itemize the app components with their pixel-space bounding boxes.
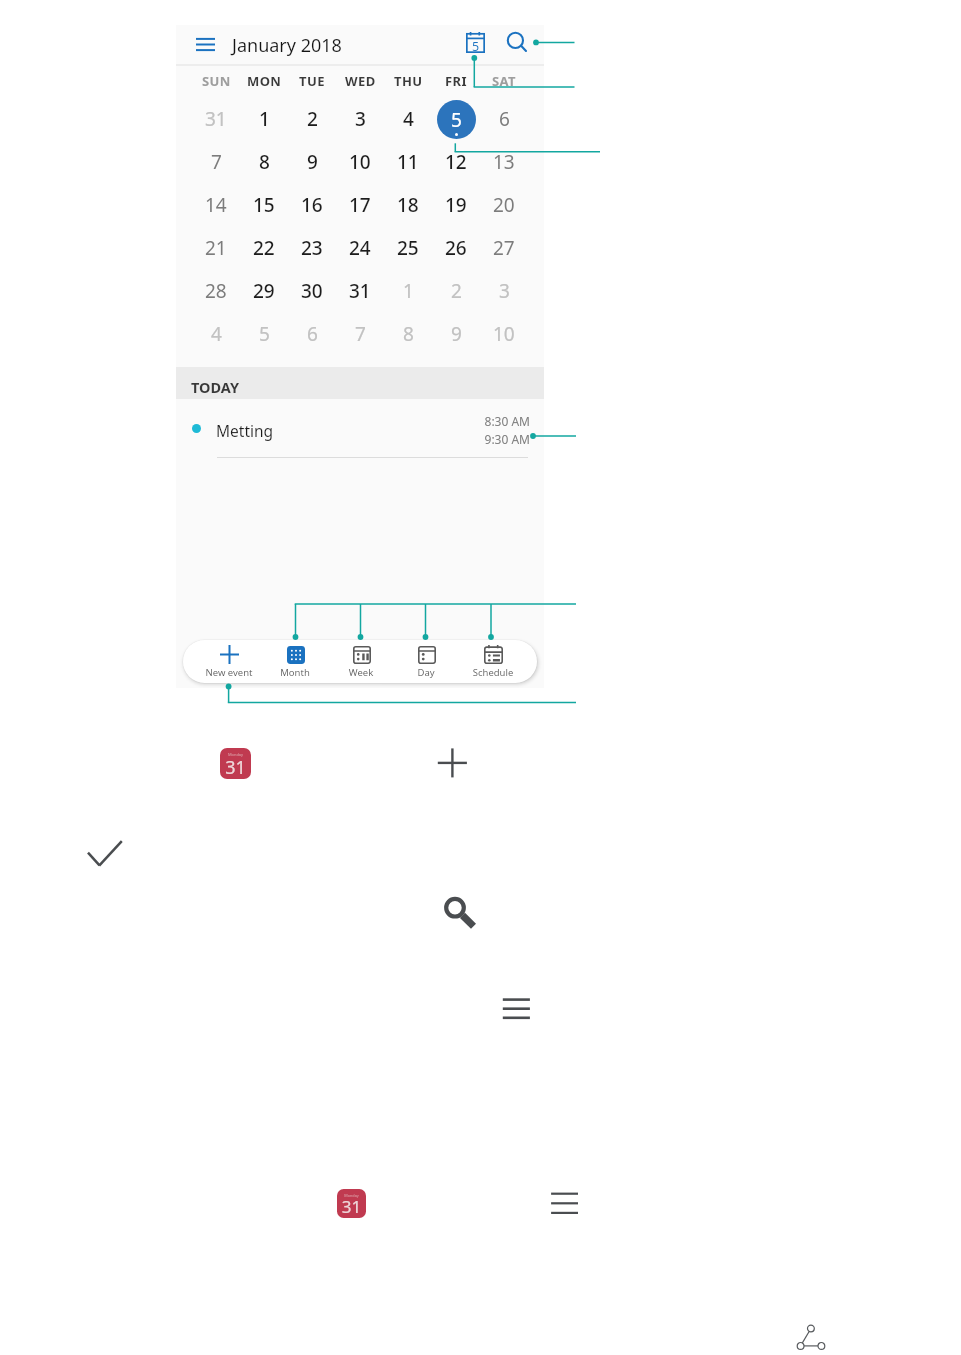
staticText: 26 — [445, 235, 467, 261]
staticText: 9 — [307, 149, 318, 175]
button[interactable]: Day — [393, 640, 459, 683]
staticText: 2 — [307, 106, 318, 132]
button[interactable]: 22 — [240, 228, 288, 268]
staticText: New event — [196, 666, 262, 679]
button[interactable]: 20 — [480, 185, 528, 225]
button[interactable]: Metting — [176, 399, 544, 461]
button[interactable]: 5 — [432, 99, 480, 139]
staticText: TUE — [299, 72, 325, 88]
staticText: 4 — [403, 106, 414, 132]
staticText: FRI — [445, 72, 467, 88]
button[interactable]: 10 — [480, 314, 528, 354]
staticText: 9 — [451, 321, 462, 347]
button[interactable]: 18 — [384, 185, 432, 225]
staticText: 30 — [301, 278, 323, 304]
button[interactable]: 10 — [336, 142, 384, 182]
button[interactable]: Calendar — [337, 1189, 366, 1218]
staticText: 20 — [493, 192, 515, 218]
button[interactable]: 14 — [192, 185, 240, 225]
button[interactable]: 28 — [192, 271, 240, 311]
staticText: 10 — [493, 321, 515, 347]
staticText: Month — [262, 666, 328, 679]
staticText: 11 — [397, 149, 419, 175]
button[interactable]: Search — [502, 27, 529, 54]
button[interactable]: 24 — [336, 228, 384, 268]
button[interactable]: 9 — [288, 142, 336, 182]
button[interactable]: New event — [196, 640, 262, 683]
button[interactable]: 11 — [384, 142, 432, 182]
button[interactable]: 1 — [240, 99, 288, 139]
button[interactable]: 3 — [336, 99, 384, 139]
button[interactable]: Menu — [193, 32, 217, 56]
button[interactable]: Menu — [500, 995, 532, 1022]
button[interactable]: 5 — [240, 314, 288, 354]
button[interactable]: 27 — [480, 228, 528, 268]
button[interactable]: 29 — [240, 271, 288, 311]
staticText: 17 — [349, 192, 371, 218]
staticText: 5 — [451, 107, 462, 133]
staticText: 19 — [445, 192, 467, 218]
staticText: 7 — [211, 149, 222, 175]
button[interactable]: Go to today — [460, 26, 491, 60]
button[interactable]: 3 — [480, 271, 528, 311]
staticText: 3 — [355, 106, 366, 132]
staticText: 18 — [397, 192, 419, 218]
staticText: 6 — [307, 321, 318, 347]
staticText: Day — [393, 666, 459, 679]
button[interactable]: Done — [85, 838, 125, 870]
button[interactable]: 17 — [336, 185, 384, 225]
staticText: 1 — [403, 278, 414, 304]
staticText: 15 — [253, 192, 275, 218]
button[interactable]: 23 — [288, 228, 336, 268]
staticText: Monday — [220, 752, 251, 757]
staticText: 31 — [349, 278, 371, 304]
staticText: 10 — [349, 149, 371, 175]
button[interactable]: 16 — [288, 185, 336, 225]
button[interactable]: 25 — [384, 228, 432, 268]
staticText: 13 — [493, 149, 515, 175]
button[interactable]: 9 — [432, 314, 480, 354]
staticText: Monday — [337, 1193, 366, 1198]
button[interactable]: 7 — [192, 142, 240, 182]
button[interactable]: 4 — [192, 314, 240, 354]
staticText: SAT — [492, 72, 516, 88]
button[interactable]: 4 — [384, 99, 432, 139]
button[interactable]: 6 — [480, 99, 528, 139]
staticText: 29 — [253, 278, 275, 304]
button[interactable]: 30 — [288, 271, 336, 311]
button[interactable]: 21 — [192, 228, 240, 268]
button[interactable]: 13 — [480, 142, 528, 182]
staticText: 14 — [205, 192, 227, 218]
button[interactable]: Month — [262, 640, 328, 683]
button[interactable]: Schedule — [460, 640, 526, 683]
button[interactable]: 8 — [384, 314, 432, 354]
button[interactable]: 31 — [192, 99, 240, 139]
button[interactable]: 26 — [432, 228, 480, 268]
button[interactable]: 12 — [432, 142, 480, 182]
button[interactable]: Week — [328, 640, 394, 683]
staticText: 24 — [349, 235, 371, 261]
button[interactable]: Menu — [549, 1190, 580, 1216]
button[interactable]: Search — [441, 894, 479, 932]
button[interactable]: Share — [795, 1322, 827, 1352]
button[interactable]: 7 — [336, 314, 384, 354]
button[interactable]: 8 — [240, 142, 288, 182]
button[interactable]: 2 — [288, 99, 336, 139]
staticText: 2 — [451, 278, 462, 304]
button[interactable]: Calendar — [220, 748, 251, 779]
button[interactable]: 1 — [384, 271, 432, 311]
staticText: 6 — [499, 106, 510, 132]
button[interactable]: 15 — [240, 185, 288, 225]
button[interactable]: Add — [436, 746, 469, 779]
staticText: 8:30 AM — [428, 413, 530, 429]
staticText: 21 — [205, 235, 227, 261]
button[interactable]: 2 — [432, 271, 480, 311]
staticText: 31 — [205, 106, 227, 132]
staticText: Metting — [216, 420, 274, 441]
staticText: 31 — [337, 1195, 366, 1218]
button[interactable]: 6 — [288, 314, 336, 354]
button[interactable]: 19 — [432, 185, 480, 225]
staticText: 28 — [205, 278, 227, 304]
button[interactable]: 31 — [336, 271, 384, 311]
staticText: Week — [328, 666, 394, 679]
